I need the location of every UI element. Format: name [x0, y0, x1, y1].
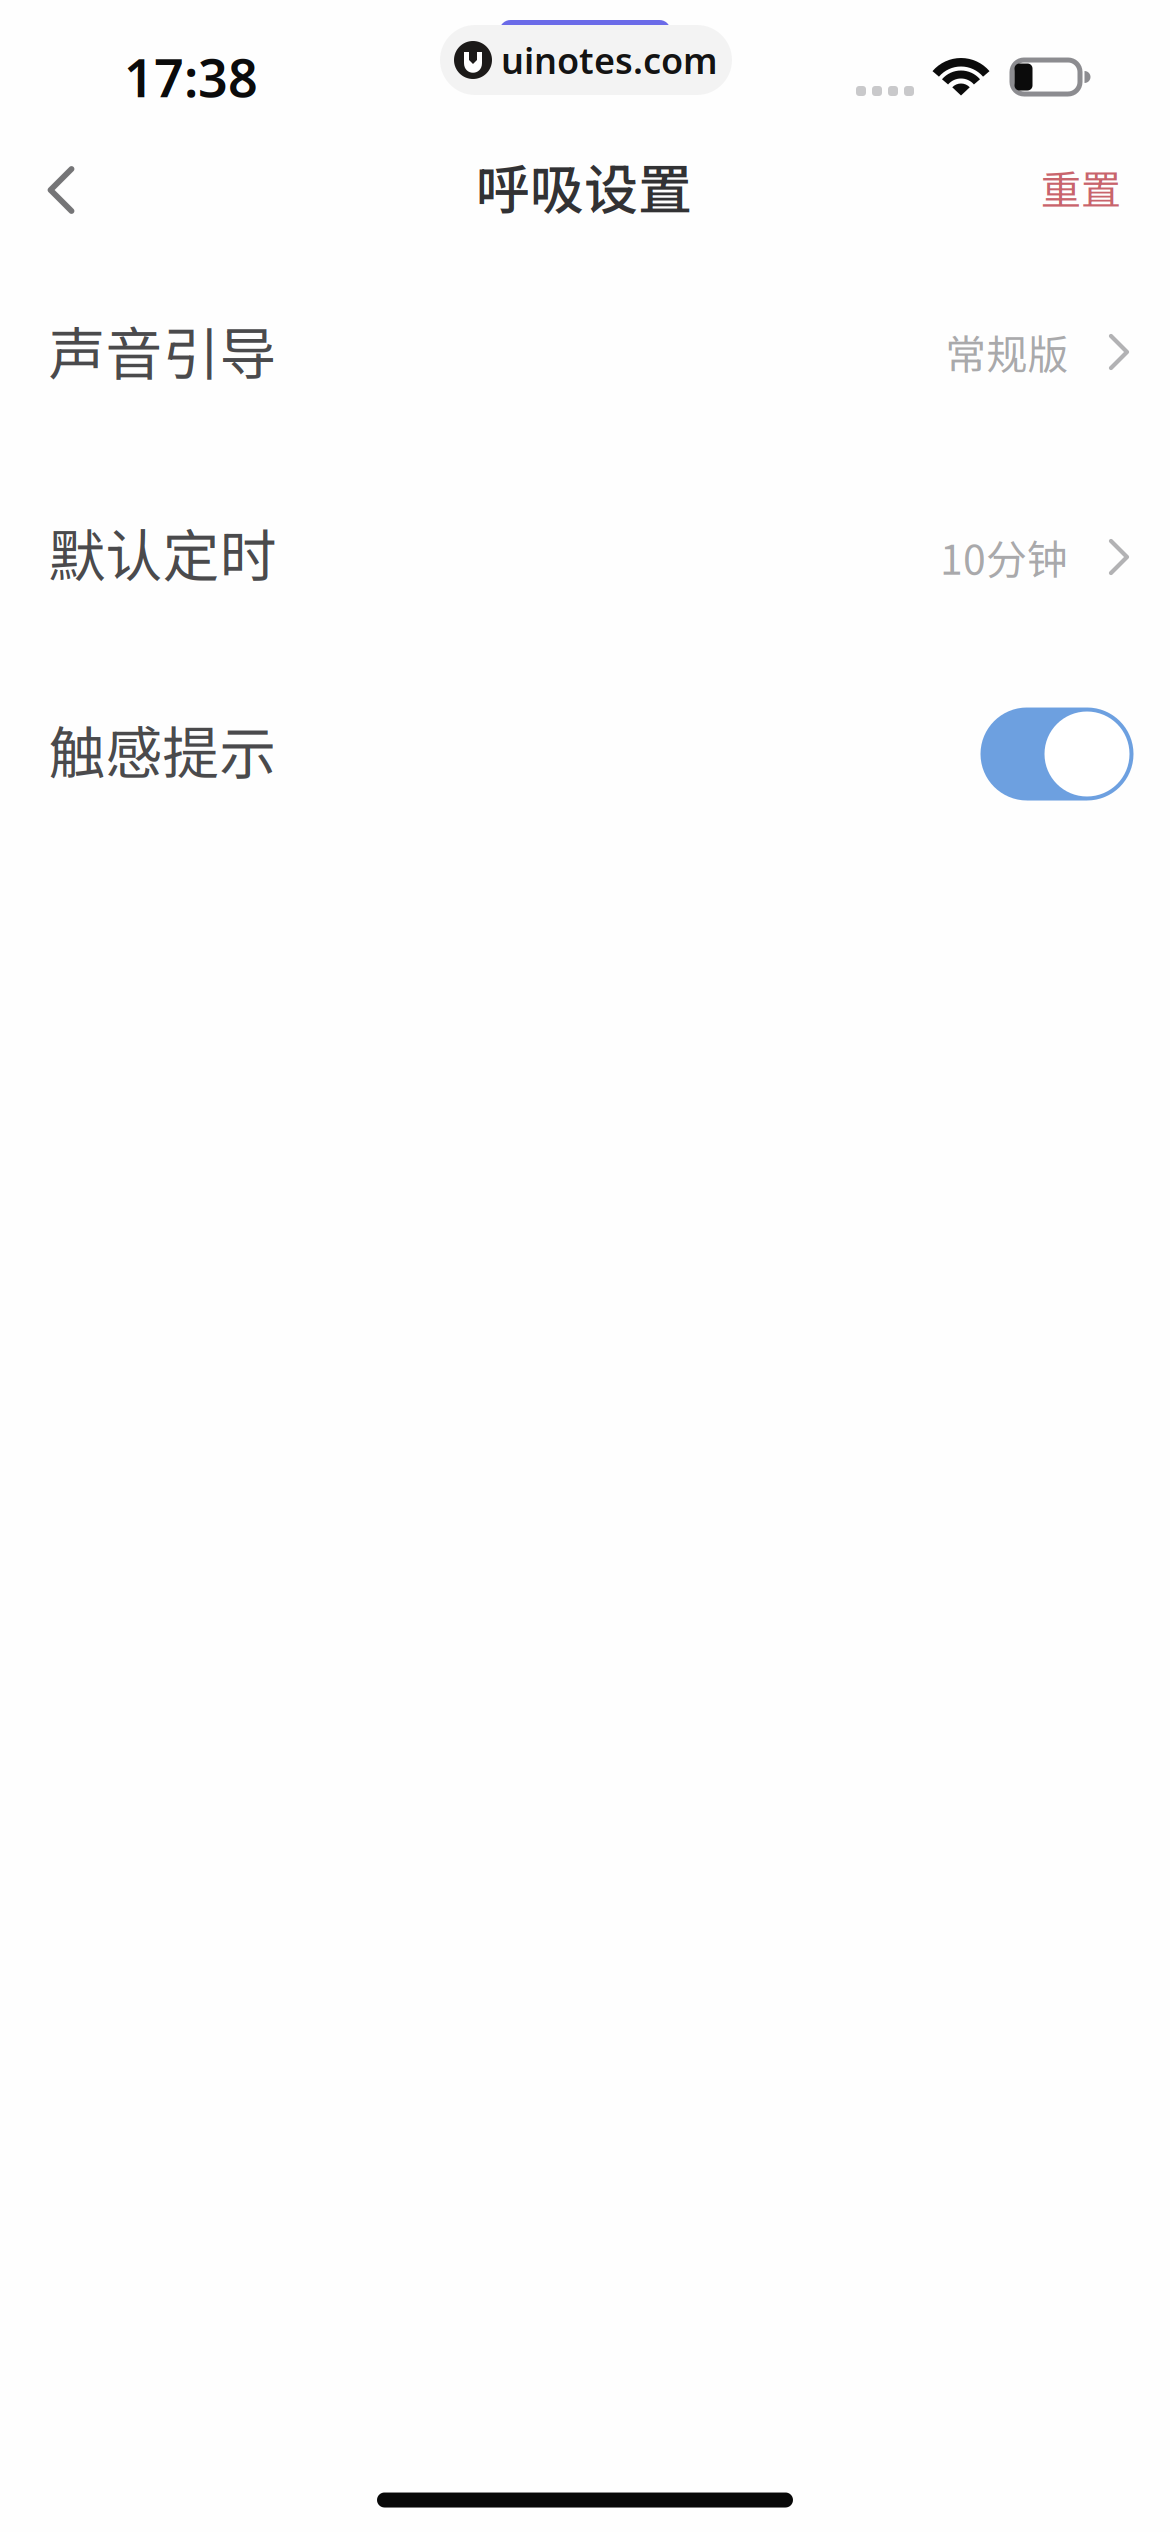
- staticText: 默认定时: [48, 511, 276, 593]
- button[interactable]: 重置: [1003, 129, 1159, 245]
- staticText: 常规版: [945, 322, 1068, 382]
- staticText: 呼吸设置: [476, 147, 692, 225]
- staticText: 17:38: [124, 42, 258, 112]
- button[interactable]: 默认定时: [0, 457, 1170, 657]
- staticText: uinotes.com: [501, 36, 718, 84]
- staticText: 触感提示: [48, 708, 276, 790]
- button[interactable]: 声音引导: [0, 252, 1170, 452]
- button[interactable]: 触感提示: [980, 707, 1133, 800]
- staticText: 10分钟: [940, 527, 1068, 587]
- staticText: 声音引导: [48, 309, 276, 391]
- staticText: 重置: [1041, 158, 1121, 216]
- button[interactable]: 返回: [0, 132, 132, 248]
